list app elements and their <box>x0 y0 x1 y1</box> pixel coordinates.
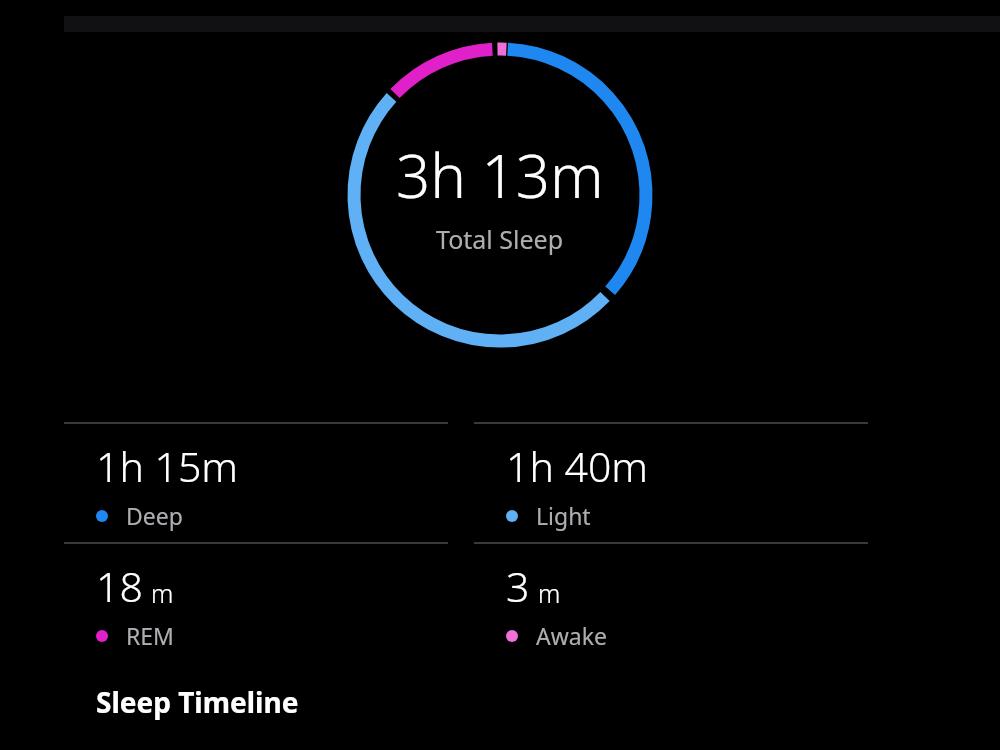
button[interactable]: 3 <box>474 542 868 662</box>
staticText: 18 <box>96 558 143 614</box>
staticText: 3h 13m <box>396 134 604 216</box>
button[interactable]: 1h 40m <box>474 422 868 542</box>
staticText: Deep <box>126 500 183 531</box>
staticText: 3 <box>506 558 530 614</box>
button[interactable]: 18 <box>64 542 448 662</box>
staticText: Awake <box>536 620 607 651</box>
staticText: REM <box>126 620 174 651</box>
staticText: 1h 15m <box>96 438 238 494</box>
staticText: 1h 40m <box>506 438 648 494</box>
staticText: Sleep Timeline <box>96 683 299 721</box>
staticText: Light <box>536 500 591 531</box>
button[interactable]: Total sleep ring <box>338 33 662 357</box>
staticText: m <box>151 576 174 610</box>
staticText: Total Sleep <box>436 222 564 256</box>
button[interactable]: Sleep Timeline <box>64 678 1000 726</box>
staticText: m <box>538 576 561 610</box>
button[interactable]: 1h 15m <box>64 422 448 542</box>
